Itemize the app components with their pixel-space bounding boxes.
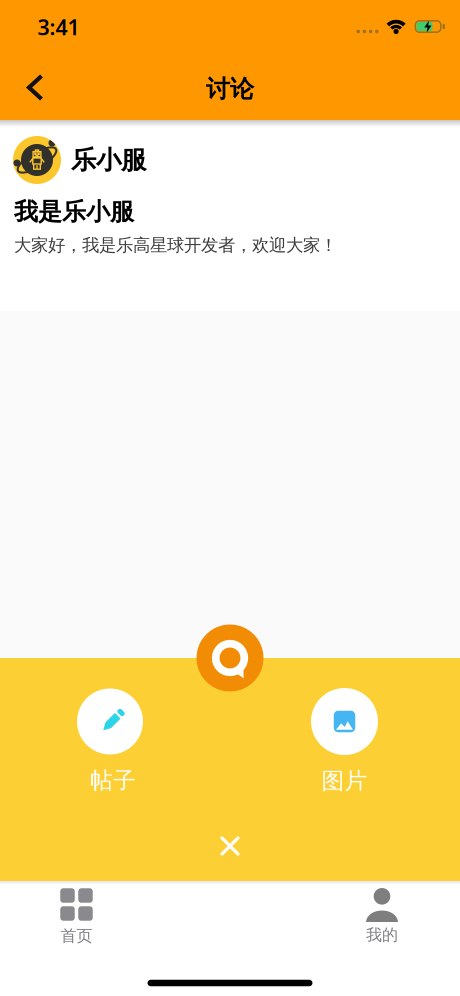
staticText: 大家好，我是乐高星球开发者，欢迎大家！ <box>14 234 337 256</box>
staticText: 我是乐小服 <box>14 197 134 226</box>
button[interactable] <box>196 624 263 691</box>
staticText: 3:41 <box>37 13 79 41</box>
button[interactable] <box>212 828 248 864</box>
staticText: 讨论 <box>206 74 254 104</box>
staticText: 我的 <box>366 925 398 945</box>
button[interactable]: 图片 <box>311 688 378 795</box>
staticText: 图片 <box>321 767 367 795</box>
staticText: 首页 <box>60 926 92 946</box>
button[interactable]: 首页 <box>60 888 93 946</box>
staticText: 乐小服 <box>71 144 146 175</box>
button[interactable]: 帖子 <box>77 688 143 794</box>
staticText: 帖子 <box>90 766 136 794</box>
button[interactable] <box>0 73 53 96</box>
button[interactable]: 我的 <box>366 888 398 945</box>
